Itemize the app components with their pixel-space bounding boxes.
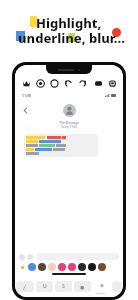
staticText: The Message bbox=[18, 121, 120, 125]
button[interactable]: Colour 6 bbox=[78, 263, 86, 271]
staticText: Highlight, bbox=[36, 14, 102, 32]
button[interactable]: Apps bbox=[27, 254, 33, 260]
staticText: S bbox=[62, 283, 65, 290]
button[interactable]: Undo bbox=[61, 76, 75, 90]
button[interactable]: More bbox=[112, 281, 122, 292]
button[interactable]: Shape bbox=[47, 76, 61, 90]
button[interactable]: Colour 5 bbox=[68, 263, 76, 271]
staticText: ◈ bbox=[100, 282, 104, 288]
button[interactable]: Crown bbox=[19, 76, 33, 90]
staticText: U bbox=[43, 283, 47, 290]
button[interactable]: Marker bbox=[33, 76, 47, 90]
button[interactable]: Colour 0 bbox=[18, 263, 26, 271]
staticText: ● bbox=[80, 284, 85, 290]
staticText: Redact bbox=[97, 291, 106, 294]
button[interactable]: Colour 2 bbox=[38, 263, 46, 271]
staticText: underline, blur... bbox=[18, 29, 125, 47]
button[interactable]: Colour 7 bbox=[88, 263, 96, 271]
button[interactable]: Redo bbox=[75, 76, 89, 90]
button[interactable]: Colour 4 bbox=[58, 263, 66, 271]
button[interactable] bbox=[26, 136, 96, 155]
staticText: Today 11:04 bbox=[18, 125, 120, 129]
button[interactable]: Blur bbox=[74, 281, 91, 292]
button[interactable]: Back bbox=[23, 108, 28, 113]
button[interactable]: Colour 8 bbox=[98, 263, 106, 271]
button[interactable]: Colour 3 bbox=[48, 263, 56, 271]
button[interactable]: Underline bbox=[36, 281, 53, 292]
button[interactable]: Camera bbox=[19, 254, 25, 260]
button[interactable]: Redact bbox=[93, 279, 110, 294]
button[interactable]: Colour 1 bbox=[28, 263, 36, 271]
button[interactable]: Strikethrough bbox=[55, 281, 72, 292]
staticText: ╱ bbox=[23, 284, 27, 290]
button[interactable]: Save bbox=[105, 76, 119, 90]
staticText: 11:08 bbox=[22, 93, 31, 98]
button[interactable]: Camera bbox=[91, 76, 105, 90]
button[interactable]: Highlight bbox=[16, 281, 34, 292]
